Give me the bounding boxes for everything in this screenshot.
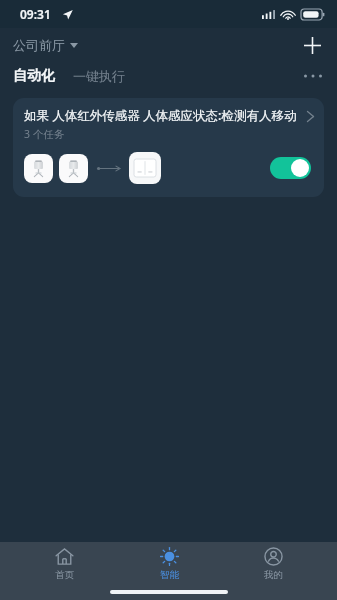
staticText: 如果 人体红外传感器 人体感应状态:检测有人移动	[24, 107, 298, 124]
staticText: 自动化	[13, 67, 55, 85]
staticText: 首页	[55, 569, 74, 581]
button[interactable]: More options	[299, 62, 327, 90]
staticText: 智能	[160, 569, 179, 581]
button[interactable]: Add	[297, 30, 327, 60]
staticText: 09:31	[20, 6, 51, 22]
button[interactable]: 我的	[233, 544, 313, 584]
button[interactable]: Automation enabled toggle	[270, 157, 311, 179]
staticText: 公司前厅	[13, 37, 65, 53]
button[interactable]: 如果 人体红外传感器 人体感应状态:检测有人移动	[13, 98, 324, 197]
button[interactable]: 首页	[24, 544, 104, 584]
button[interactable]: 公司前厅	[11, 34, 80, 56]
button[interactable]: 一键执行	[71, 64, 127, 88]
button[interactable]: 智能	[129, 544, 209, 584]
button[interactable]: 自动化	[11, 63, 57, 89]
staticText: 3 个任务	[24, 127, 65, 141]
staticText: 一键执行	[73, 68, 125, 84]
staticText: 我的	[264, 569, 283, 581]
